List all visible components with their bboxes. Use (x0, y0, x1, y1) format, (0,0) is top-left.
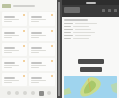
button[interactable] (29, 43, 55, 56)
button[interactable]: Primary button (78, 59, 104, 64)
button[interactable]: Tool 1 (5, 89, 13, 97)
button[interactable] (2, 43, 27, 56)
button[interactable] (2, 28, 27, 41)
button[interactable]: Tool 5 (37, 89, 45, 97)
button[interactable]: Tool 4 (29, 89, 37, 97)
button[interactable]: Menu 3 (113, 8, 117, 12)
button[interactable] (29, 12, 55, 26)
button[interactable]: Secondary button (80, 67, 102, 72)
button[interactable]: Tool 6 (45, 89, 53, 97)
button[interactable] (2, 12, 27, 26)
button[interactable]: Tool 3 (21, 89, 29, 97)
button[interactable] (29, 28, 55, 41)
button[interactable] (29, 73, 55, 86)
button[interactable]: Tool 2 (13, 89, 21, 97)
button[interactable] (29, 58, 55, 71)
button[interactable]: Menu 1 (101, 8, 105, 12)
button[interactable]: Map (64, 76, 117, 98)
button[interactable] (2, 58, 27, 71)
button[interactable]: Menu 2 (107, 8, 111, 12)
button[interactable] (2, 73, 27, 86)
